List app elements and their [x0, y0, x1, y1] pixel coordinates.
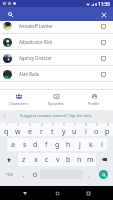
button[interactable]: Clear search — [99, 10, 108, 19]
staticText: 11:56 — [98, 1, 110, 7]
button[interactable]: j — [74, 138, 85, 151]
button[interactable]: Annakoff Leviter — [0, 18, 113, 34]
staticText: s — [23, 140, 27, 150]
button[interactable]: b — [63, 153, 74, 166]
staticText: j — [79, 140, 81, 150]
button[interactable]: Backspace — [96, 153, 113, 166]
staticText: r — [40, 127, 43, 136]
staticText: 7 — [74, 123, 76, 127]
button[interactable]: Profile — [75, 90, 113, 110]
staticText: Characters — [9, 101, 29, 106]
staticText: Episodes — [48, 101, 64, 106]
staticText: i — [85, 127, 87, 136]
button[interactable]: l — [96, 138, 107, 151]
button[interactable]: z — [18, 153, 30, 166]
staticText: e — [28, 127, 32, 136]
button[interactable]: g — [52, 138, 63, 151]
staticText: z — [22, 155, 26, 165]
staticText: Suggest contact names? Tap for info. — [20, 113, 93, 119]
button[interactable]: More suggestions — [1, 113, 7, 119]
button[interactable]: f — [41, 138, 52, 151]
button[interactable]: Shift — [0, 153, 18, 166]
button[interactable]: 6 — [58, 123, 69, 136]
staticText: p — [105, 127, 110, 136]
button[interactable]: Episodes — [37, 90, 75, 110]
button[interactable]: k — [85, 138, 96, 151]
staticText: 5 — [52, 123, 54, 127]
staticText: 6 — [63, 123, 65, 127]
staticText: q — [4, 127, 9, 136]
staticText: Agency Director — [19, 55, 52, 61]
button[interactable]: 3 — [24, 123, 36, 136]
button[interactable]: a — [7, 138, 19, 151]
staticText: c — [45, 155, 49, 165]
staticText: l — [101, 140, 103, 150]
staticText: 9 — [96, 123, 98, 127]
button[interactable]: Characters — [0, 90, 37, 110]
staticText: . — [88, 172, 90, 178]
staticText: a — [11, 140, 15, 150]
staticText: o — [94, 127, 99, 136]
button[interactable]: 1 — [0, 123, 12, 136]
staticText: 3 — [29, 123, 31, 127]
button[interactable]: c — [41, 153, 52, 166]
staticText: m — [87, 155, 94, 165]
button[interactable]: Agency Director — [0, 50, 113, 66]
button[interactable]: Search — [6, 10, 15, 19]
staticText: Adjudicator Rick — [19, 39, 53, 45]
button[interactable]: Home — [51, 187, 63, 199]
button[interactable]: m — [85, 153, 96, 166]
staticText: Annakoff Leviter — [19, 23, 53, 29]
button[interactable]: ?123 — [0, 168, 18, 181]
staticText: y — [62, 127, 66, 136]
button[interactable]: 0 — [102, 123, 113, 136]
staticText: d — [33, 140, 38, 150]
button[interactable]: 5 — [47, 123, 58, 136]
staticText: v — [56, 155, 60, 165]
staticText: ?123 — [6, 173, 13, 177]
button[interactable]: 4 — [36, 123, 47, 136]
staticText: h — [66, 140, 71, 150]
button[interactable]: s — [19, 138, 30, 151]
staticText: f — [45, 140, 48, 150]
staticText: 4 — [41, 123, 43, 127]
button[interactable]: Adjudicator Rick — [0, 34, 113, 50]
staticText: Profile — [88, 101, 100, 106]
staticText: t — [51, 127, 54, 136]
button[interactable]: Alan Rails — [0, 66, 113, 82]
button[interactable]: Comma — [18, 168, 29, 181]
button[interactable]: 8 — [80, 123, 91, 136]
staticText: 0 — [107, 123, 109, 127]
button[interactable]: Search — [94, 167, 113, 182]
button[interactable]: v — [52, 153, 63, 166]
button[interactable]: d — [30, 138, 41, 151]
button[interactable]: Recent apps — [82, 187, 94, 199]
staticText: n — [77, 155, 82, 165]
button[interactable]: 9 — [91, 123, 102, 136]
button[interactable]: Period — [83, 168, 94, 181]
button[interactable]: Back — [19, 187, 31, 199]
button[interactable]: 7 — [69, 123, 80, 136]
staticText: x — [34, 155, 38, 165]
staticText: k — [89, 140, 93, 150]
staticText: b — [66, 155, 71, 165]
button[interactable]: h — [63, 138, 74, 151]
button[interactable]: Suggest contact names? Tap for info. — [20, 113, 93, 119]
staticText: g — [55, 140, 60, 150]
staticText: u — [72, 127, 77, 136]
staticText: w — [15, 127, 21, 136]
staticText: 2 — [17, 123, 19, 127]
staticText: 8 — [85, 123, 87, 127]
staticText: , — [23, 172, 25, 178]
button[interactable]: 2 — [12, 123, 24, 136]
button[interactable]: n — [74, 153, 85, 166]
button[interactable]: Emoji — [29, 168, 40, 181]
staticText: 1 — [6, 123, 8, 127]
staticText: Alan Rails — [19, 71, 39, 77]
button[interactable]: x — [30, 153, 41, 166]
